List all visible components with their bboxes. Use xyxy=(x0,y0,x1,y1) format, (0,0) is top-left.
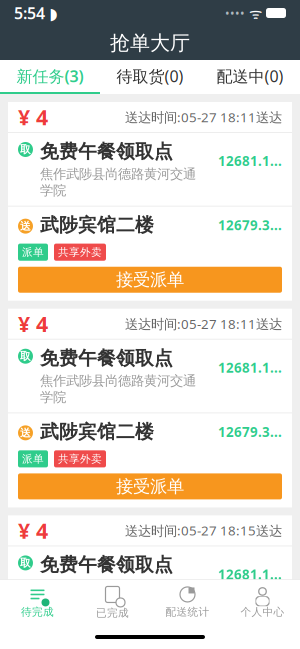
staticText: 紫荆公馆一号楼 xyxy=(40,627,173,649)
staticText: 焦作武陟县尚德路黄河交通学院 xyxy=(40,166,196,199)
staticText: ¥ 4 xyxy=(18,103,48,131)
staticText: 个人中心 xyxy=(240,605,284,618)
button[interactable]: 接受派单 xyxy=(18,267,282,293)
staticText: 送 xyxy=(20,426,31,439)
staticText: 取 xyxy=(20,556,31,569)
staticText: 新任务(3) xyxy=(16,65,83,87)
staticText: 武陟宾馆二楼 xyxy=(40,214,154,237)
staticText: 送达时间:05-27 18:15送达 xyxy=(125,522,282,539)
staticText: 送 xyxy=(20,220,31,233)
staticText: 免费午餐领取点 xyxy=(40,347,173,370)
button[interactable]: 已完成 xyxy=(75,580,150,625)
staticText: 送达时间:05-27 18:11送达 xyxy=(125,108,282,126)
staticText: 免费午餐领取点 xyxy=(40,553,173,576)
staticText: ¥ 4 xyxy=(18,309,48,338)
staticText: 焦作武陟县尚德路黄河交通学院 xyxy=(40,579,196,612)
staticText: 待完成 xyxy=(21,605,54,618)
staticText: 共享外卖 xyxy=(58,452,102,465)
staticText: 12681.1... xyxy=(218,565,282,583)
staticText: 配送中(0) xyxy=(216,65,283,87)
staticText: 免费午餐领取点 xyxy=(40,140,173,163)
staticText: 12681.1... xyxy=(218,152,282,170)
staticText: 12679.3... xyxy=(218,423,282,441)
staticText: 12681.1... xyxy=(218,359,282,376)
staticText: 送达时间:05-27 18:11送达 xyxy=(125,315,282,333)
staticText: 武陟宾馆二楼 xyxy=(40,420,154,443)
button[interactable]: 配送统计 xyxy=(150,580,225,625)
staticText: ᯤ xyxy=(245,3,262,23)
staticText: 12679.3... xyxy=(218,216,282,234)
staticText: 接受派单 xyxy=(116,476,184,497)
staticText: 已完成 xyxy=(96,606,129,619)
staticText: 待取货(0) xyxy=(116,65,183,87)
staticText: 派单 xyxy=(22,452,44,465)
button[interactable]: 新任务(3) xyxy=(0,60,100,92)
staticText: 配送统计 xyxy=(165,605,209,618)
staticText: 取 xyxy=(20,350,31,363)
staticText: 焦作武陟县尚德路黄河交通学院 xyxy=(40,373,196,405)
button[interactable]: 待取货(0) xyxy=(100,60,200,92)
staticText: 派单 xyxy=(22,246,44,259)
staticText: 取 xyxy=(20,143,31,156)
button[interactable]: 待完成 xyxy=(0,580,75,625)
button[interactable]: 个人中心 xyxy=(225,580,300,625)
staticText: •••• xyxy=(225,5,245,21)
button[interactable]: 配送中(0) xyxy=(200,60,300,92)
staticText: ¥ 4 xyxy=(18,516,48,545)
staticText: 5:54 ◗ xyxy=(14,2,57,24)
staticText: 共享外卖 xyxy=(58,246,102,259)
button[interactable]: 接受派单 xyxy=(18,473,282,499)
staticText: 接受派单 xyxy=(116,269,184,290)
staticText: 抢单大厅 xyxy=(110,31,190,55)
